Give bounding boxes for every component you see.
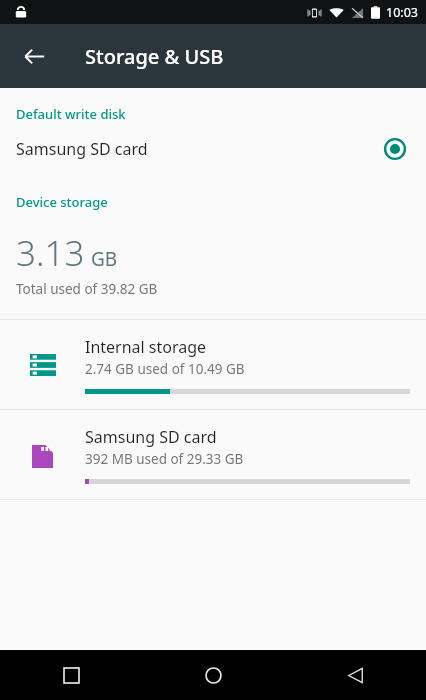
staticText: Storage & USB bbox=[85, 43, 224, 70]
button[interactable]: Recents bbox=[0, 650, 142, 700]
staticText: 2.74 GB used of 10.49 GB bbox=[85, 360, 245, 378]
button[interactable]: Samsung SD card bbox=[0, 410, 426, 499]
staticText: 3.13 bbox=[16, 229, 85, 277]
staticText: Total used of 39.82 GB bbox=[16, 280, 158, 298]
staticText: Device storage bbox=[16, 193, 108, 211]
staticText: GB bbox=[91, 246, 118, 272]
button[interactable]: Back bbox=[284, 650, 426, 700]
button[interactable]: Internal storage bbox=[0, 320, 426, 409]
button[interactable]: Samsung SD card bbox=[0, 123, 426, 175]
staticText: Internal storage bbox=[85, 336, 207, 358]
staticText: Samsung SD card bbox=[85, 426, 217, 448]
staticText: Default write disk bbox=[16, 105, 126, 123]
staticText: Samsung SD card bbox=[16, 138, 384, 160]
staticText: 392 MB used of 29.33 GB bbox=[85, 450, 244, 468]
button[interactable]: Home bbox=[142, 650, 284, 700]
staticText: 10:03 bbox=[386, 4, 418, 21]
button[interactable]: Back bbox=[10, 32, 58, 80]
